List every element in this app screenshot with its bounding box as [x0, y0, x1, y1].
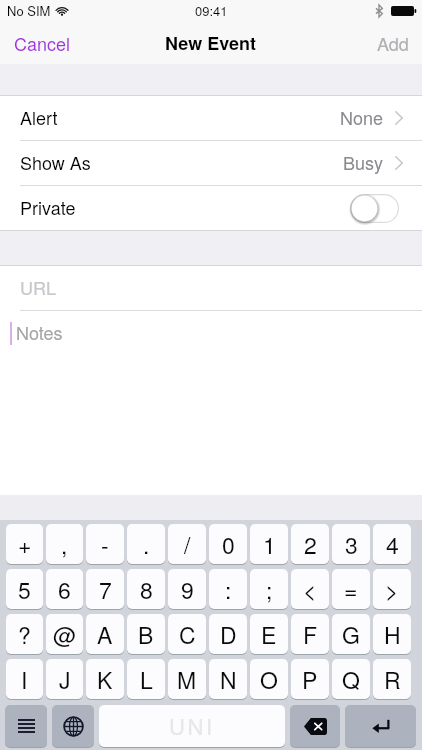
staticText: New Event: [165, 30, 257, 56]
staticText: Cancel: [14, 30, 71, 55]
button[interactable]: 7: [86, 569, 124, 610]
button[interactable]: F: [291, 614, 329, 655]
staticText: C: [179, 618, 196, 651]
staticText: 1: [263, 528, 276, 561]
staticText: <: [303, 573, 317, 606]
staticText: A: [97, 618, 113, 651]
button[interactable]: 3: [332, 524, 370, 565]
staticText: /: [184, 528, 191, 561]
staticText: L: [140, 663, 153, 696]
button[interactable]: 6: [46, 569, 83, 610]
button[interactable]: .: [127, 524, 165, 565]
staticText: 09:41: [195, 1, 228, 20]
staticText: ?: [18, 618, 31, 651]
button[interactable]: 9: [168, 569, 206, 610]
staticText: H: [384, 618, 401, 651]
button[interactable]: 2: [291, 524, 329, 565]
staticText: E: [261, 618, 277, 651]
button[interactable]: >: [373, 569, 411, 610]
button[interactable]: /: [168, 524, 206, 565]
button[interactable]: =: [332, 569, 370, 610]
button[interactable]: J: [46, 659, 83, 700]
button[interactable]: 5: [6, 569, 43, 610]
button[interactable]: @: [46, 614, 83, 655]
button[interactable]: UNI: [99, 705, 285, 748]
staticText: P: [302, 663, 318, 696]
button[interactable]: :: [209, 569, 247, 610]
staticText: N: [220, 663, 237, 696]
button[interactable]: A: [86, 614, 124, 655]
button[interactable]: N: [209, 659, 247, 700]
button[interactable]: Add: [363, 23, 422, 62]
staticText: 3: [345, 528, 358, 561]
button[interactable]: ;: [250, 569, 288, 610]
button[interactable]: O: [250, 659, 288, 700]
staticText: Show As: [20, 149, 91, 175]
button[interactable]: R: [373, 659, 411, 700]
button[interactable]: URL: [0, 266, 422, 310]
staticText: Busy: [343, 149, 384, 175]
staticText: ;: [266, 573, 273, 606]
button[interactable]: C: [168, 614, 206, 655]
staticText: 0: [222, 528, 235, 561]
button[interactable]: P: [291, 659, 329, 700]
staticText: 6: [58, 573, 71, 606]
staticText: R: [384, 663, 401, 696]
staticText: J: [59, 663, 71, 696]
button[interactable]: Private: [350, 194, 399, 223]
staticText: ,: [61, 528, 68, 561]
button[interactable]: Backspace: [290, 705, 340, 748]
button[interactable]: <: [291, 569, 329, 610]
staticText: 9: [181, 573, 194, 606]
button[interactable]: ?: [6, 614, 43, 655]
button[interactable]: Show As: [0, 141, 422, 185]
button[interactable]: Q: [332, 659, 370, 700]
button[interactable]: M: [168, 659, 206, 700]
button[interactable]: 1: [250, 524, 288, 565]
staticText: UNI: [169, 710, 215, 742]
button[interactable]: Change keyboard: [52, 705, 94, 748]
button[interactable]: B: [127, 614, 165, 655]
button[interactable]: E: [250, 614, 288, 655]
staticText: >: [385, 573, 399, 606]
button[interactable]: -: [86, 524, 124, 565]
button[interactable]: ,: [46, 524, 83, 565]
staticText: Private: [20, 194, 76, 220]
staticText: URL: [20, 274, 56, 300]
button[interactable]: 8: [127, 569, 165, 610]
button[interactable]: I: [6, 659, 43, 700]
button[interactable]: K: [86, 659, 124, 700]
button[interactable]: Cancel: [0, 23, 85, 62]
staticText: 2: [304, 528, 317, 561]
staticText: 4: [386, 528, 399, 561]
button[interactable]: Notes: [0, 311, 422, 355]
staticText: -: [101, 528, 109, 561]
staticText: O: [260, 663, 278, 696]
staticText: I: [21, 663, 28, 696]
button[interactable]: +: [6, 524, 43, 565]
staticText: +: [18, 528, 32, 561]
staticText: Q: [342, 663, 360, 696]
button[interactable]: 4: [373, 524, 411, 565]
staticText: Notes: [16, 319, 63, 345]
button[interactable]: Alert: [0, 96, 422, 140]
staticText: D: [220, 618, 237, 651]
button[interactable]: H: [373, 614, 411, 655]
button[interactable]: L: [127, 659, 165, 700]
button[interactable]: 0: [209, 524, 247, 565]
button[interactable]: G: [332, 614, 370, 655]
staticText: F: [303, 618, 318, 651]
staticText: K: [97, 663, 113, 696]
staticText: @: [53, 618, 77, 651]
button[interactable]: D: [209, 614, 247, 655]
button[interactable]: Return: [345, 705, 416, 748]
staticText: G: [342, 618, 360, 651]
staticText: 8: [140, 573, 153, 606]
staticText: B: [138, 618, 154, 651]
staticText: Alert: [20, 104, 58, 130]
staticText: .: [143, 528, 150, 561]
staticText: Add: [377, 30, 409, 55]
staticText: =: [344, 573, 358, 606]
button[interactable]: Keyboard layouts: [5, 705, 47, 748]
staticText: 5: [18, 573, 31, 606]
